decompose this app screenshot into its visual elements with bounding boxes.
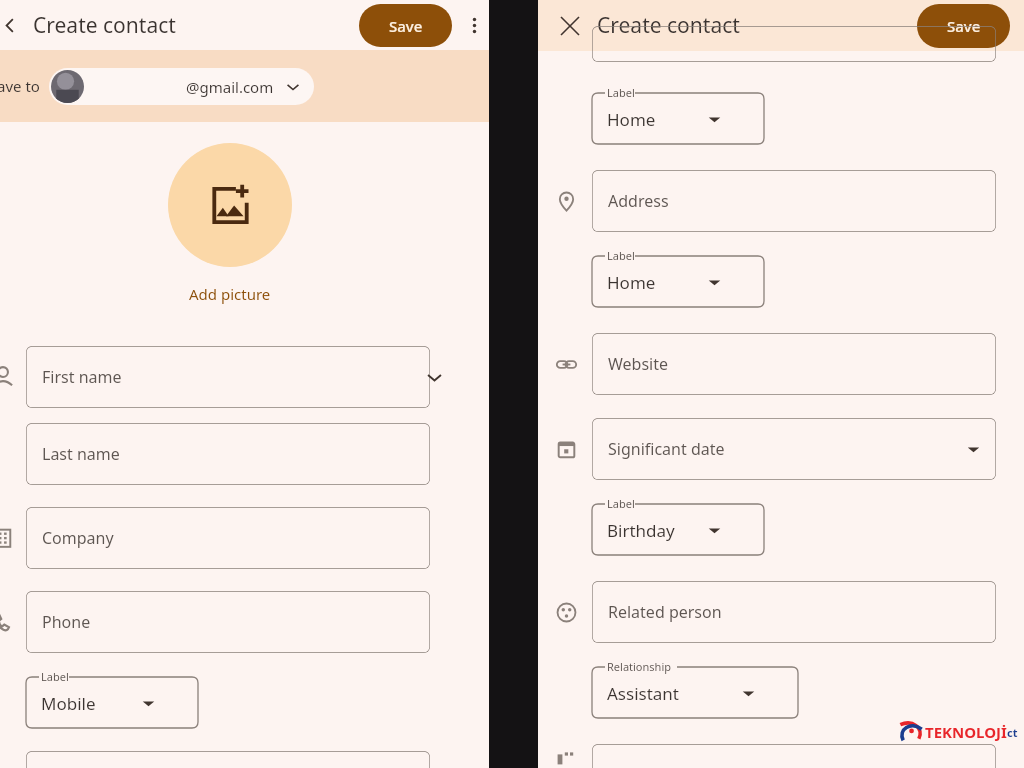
staticText: Website	[608, 353, 669, 375]
staticText: Save	[947, 16, 981, 36]
button[interactable]: Label	[26, 668, 198, 728]
staticText: ave to	[0, 76, 40, 96]
staticText: Add picture	[189, 284, 271, 304]
staticText: @gmail.com	[186, 77, 274, 97]
button[interactable]	[592, 26, 996, 62]
button[interactable]: First name	[26, 346, 430, 408]
button[interactable]: Save	[359, 4, 452, 47]
staticText: Label	[607, 85, 635, 100]
button[interactable]: Phone	[26, 591, 430, 653]
button[interactable]: Company	[26, 507, 430, 569]
button[interactable]: Save	[917, 4, 1010, 48]
staticText: Mobile	[41, 692, 96, 715]
staticText: Last name	[42, 443, 120, 465]
staticText: Label	[607, 248, 635, 263]
button[interactable]: Back	[0, 6, 28, 44]
button[interactable]: Add picture	[168, 143, 292, 267]
staticText: Assistant	[607, 682, 679, 705]
staticText: First name	[42, 366, 122, 388]
staticText: Relationship	[607, 659, 671, 674]
button[interactable]: Relationship	[592, 658, 798, 718]
button[interactable]: Label	[592, 84, 764, 144]
staticText: Related person	[608, 601, 722, 623]
staticText: Significant date	[608, 438, 725, 460]
button[interactable]: Label	[592, 495, 764, 555]
staticText: Create contact	[597, 11, 740, 40]
staticText: ct	[1007, 725, 1018, 740]
staticText: Label	[41, 669, 69, 684]
staticText: Address	[608, 190, 669, 212]
button[interactable]	[26, 751, 430, 768]
staticText: Phone	[42, 611, 91, 633]
staticText: Create contact	[33, 11, 176, 40]
staticText: Home	[607, 271, 656, 294]
button[interactable]: Significant date	[592, 418, 996, 480]
button[interactable]: Label	[592, 247, 764, 307]
button[interactable]: More options	[459, 5, 489, 45]
button[interactable]: Close	[551, 7, 589, 45]
button[interactable]: @gmail.com	[49, 68, 314, 105]
button[interactable]: Address	[592, 170, 996, 232]
staticText: Home	[607, 108, 656, 131]
staticText: Save	[389, 16, 423, 36]
button[interactable]: Last name	[26, 423, 430, 485]
button[interactable]: Related person	[592, 581, 996, 643]
staticText: TEKNOLOJİ	[925, 722, 1007, 742]
staticText: Birthday	[607, 519, 675, 542]
button[interactable]: Website	[592, 333, 996, 395]
button[interactable]: Expand name fields	[419, 362, 449, 392]
staticText: Label	[607, 496, 635, 511]
button[interactable]	[592, 744, 996, 768]
staticText: Company	[42, 527, 114, 549]
